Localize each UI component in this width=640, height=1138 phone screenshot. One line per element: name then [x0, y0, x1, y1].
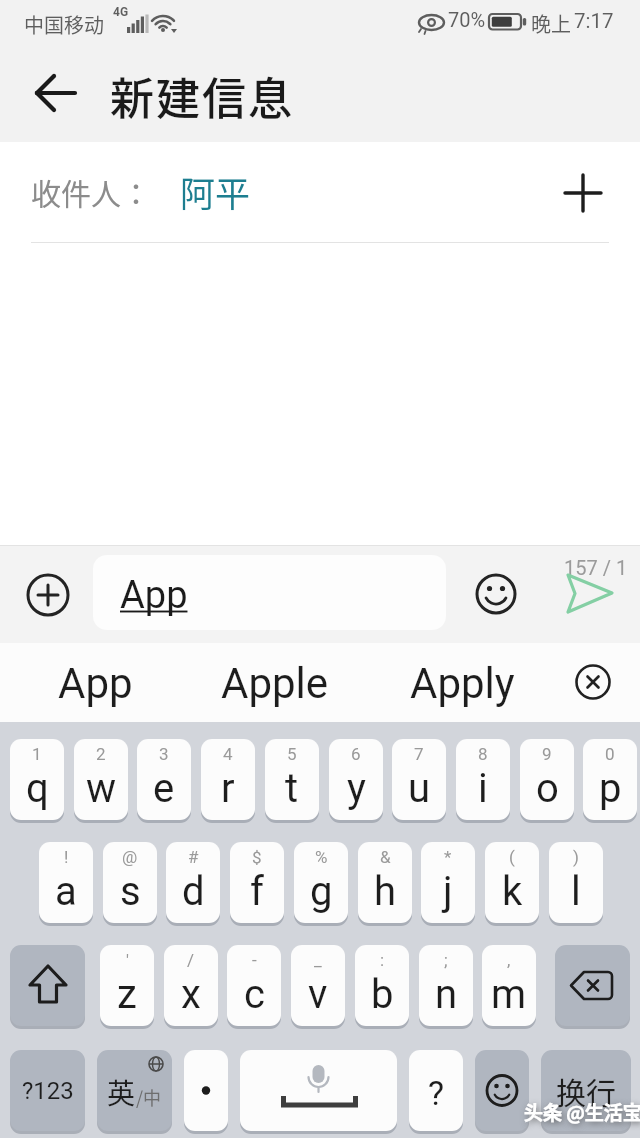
staticText: 3: [159, 744, 169, 764]
button[interactable]: [475, 573, 517, 615]
button[interactable]: [30, 67, 80, 117]
button[interactable]: 2: [74, 739, 128, 820]
button[interactable]: [10, 945, 85, 1026]
button[interactable]: 英: [97, 1050, 172, 1131]
button[interactable]: -: [227, 945, 281, 1026]
button[interactable]: &: [358, 842, 412, 923]
button[interactable]: ,: [482, 945, 536, 1026]
button[interactable]: %: [294, 842, 348, 923]
button[interactable]: (: [485, 842, 539, 923]
staticText: 1: [32, 744, 42, 764]
staticText: n: [435, 971, 458, 1018]
staticText: ;: [444, 950, 448, 970]
button[interactable]: :: [355, 945, 409, 1026]
button[interactable]: [475, 1050, 529, 1131]
staticText: e: [153, 765, 175, 812]
staticText: w: [86, 765, 117, 812]
staticText: 2: [96, 744, 106, 764]
staticText: #: [188, 847, 199, 867]
button[interactable]: Apple: [205, 651, 345, 715]
staticText: *: [444, 847, 452, 867]
button[interactable]: [240, 1050, 397, 1131]
button[interactable]: 0: [583, 739, 637, 820]
button[interactable]: App: [93, 555, 446, 630]
button[interactable]: 6: [329, 739, 383, 820]
staticText: 4G: [113, 5, 129, 19]
button[interactable]: App: [40, 651, 150, 715]
staticText: ,: [507, 950, 511, 970]
button[interactable]: 8: [456, 739, 510, 820]
staticText: 4: [223, 744, 233, 764]
button[interactable]: @: [103, 842, 157, 923]
button[interactable]: 7: [392, 739, 446, 820]
staticText: Apple: [221, 659, 329, 708]
button[interactable]: *: [421, 842, 475, 923]
staticText: App: [58, 659, 133, 708]
staticText: /: [187, 950, 195, 970]
staticText: $: [252, 847, 262, 867]
staticText: j: [443, 868, 453, 915]
staticText: 6: [351, 744, 361, 764]
button[interactable]: #: [166, 842, 220, 923]
button[interactable]: [564, 573, 616, 617]
button[interactable]: !: [39, 842, 93, 923]
staticText: ?: [428, 1073, 445, 1113]
staticText: _: [314, 950, 322, 970]
staticText: v: [308, 971, 328, 1018]
button[interactable]: Apply: [392, 651, 532, 715]
staticText: g: [310, 868, 333, 915]
button[interactable]: [558, 168, 608, 218]
staticText: d: [182, 868, 205, 915]
staticText: 8: [478, 744, 488, 764]
staticText: r: [221, 765, 235, 812]
button[interactable]: 4: [201, 739, 255, 820]
staticText: 0: [605, 744, 615, 764]
button[interactable]: [184, 1050, 228, 1131]
staticText: b: [371, 971, 394, 1018]
staticText: a: [55, 868, 77, 915]
staticText: i: [478, 765, 488, 812]
staticText: 157 / 1: [564, 556, 628, 579]
button[interactable]: _: [291, 945, 345, 1026]
staticText: Apply: [410, 659, 515, 708]
staticText: o: [536, 765, 559, 812]
button[interactable]: ): [549, 842, 603, 923]
button[interactable]: /: [164, 945, 218, 1026]
button[interactable]: ?: [409, 1050, 463, 1131]
button[interactable]: 1: [10, 739, 64, 820]
button[interactable]: ': [100, 945, 154, 1026]
staticText: ): [573, 847, 579, 867]
button[interactable]: ?123: [10, 1050, 85, 1131]
staticText: y: [347, 765, 366, 812]
button[interactable]: [555, 945, 630, 1026]
staticText: 9: [542, 744, 552, 764]
staticText: 头条 @生活宝: [524, 1098, 640, 1126]
button[interactable]: ;: [419, 945, 473, 1026]
staticText: l: [571, 868, 581, 915]
staticText: z: [117, 971, 137, 1018]
button[interactable]: 3: [137, 739, 191, 820]
staticText: q: [26, 765, 49, 812]
staticText: /中: [136, 1084, 162, 1110]
staticText: u: [408, 765, 431, 812]
staticText: 中国移动: [24, 10, 104, 39]
staticText: 晚上: [531, 9, 571, 38]
button[interactable]: [418, 11, 446, 35]
staticText: :: [380, 950, 385, 970]
staticText: 7:17: [574, 9, 614, 33]
staticText: 换行: [556, 1069, 616, 1112]
staticText: t: [285, 765, 299, 812]
staticText: 收件人：: [31, 170, 151, 213]
button[interactable]: 换行: [541, 1050, 631, 1131]
button[interactable]: $: [230, 842, 284, 923]
staticText: c: [244, 971, 265, 1018]
staticText: m: [491, 971, 527, 1018]
button[interactable]: [574, 663, 612, 701]
button[interactable]: [26, 573, 70, 617]
staticText: !: [64, 847, 69, 867]
staticText: 阿平: [180, 166, 251, 217]
button[interactable]: 9: [520, 739, 574, 820]
staticText: 5: [287, 744, 297, 764]
button[interactable]: 5: [265, 739, 319, 820]
staticText: -: [252, 950, 257, 970]
